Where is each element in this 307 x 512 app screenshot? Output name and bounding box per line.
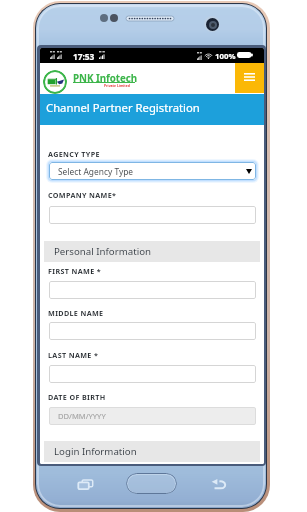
button[interactable]: Date of birth xyxy=(49,407,256,425)
staticText: 17:53 xyxy=(73,51,95,62)
staticText: Channel Partner Registration xyxy=(46,100,200,115)
button[interactable]: Home xyxy=(126,473,177,494)
staticText: Select Agency Type xyxy=(58,166,134,177)
staticText: DATE OF BIRTH xyxy=(48,392,106,402)
staticText: DD/MM/YYYY xyxy=(58,411,106,421)
staticText: Personal Information xyxy=(54,245,152,258)
staticText: COMPANY NAME* xyxy=(48,190,117,200)
staticText: Private Limited xyxy=(104,83,130,88)
button[interactable]: Text field xyxy=(49,322,256,340)
staticText: MIDDLE NAME xyxy=(48,308,104,318)
staticText: FIRST NAME * xyxy=(48,266,102,276)
button[interactable]: Recent apps xyxy=(74,474,97,495)
staticText: 100% xyxy=(215,51,236,62)
staticText: PNK Infotech xyxy=(73,72,138,85)
staticText: LAST NAME * xyxy=(48,350,99,360)
button[interactable]: Open navigation menu xyxy=(235,63,264,93)
button[interactable]: Back xyxy=(207,474,230,495)
button[interactable]: Text field xyxy=(49,281,256,299)
button[interactable]: Text field xyxy=(49,365,256,383)
button[interactable]: Text field xyxy=(49,206,256,224)
staticText: Login Information xyxy=(54,445,137,458)
button[interactable]: Select agency type xyxy=(49,162,256,180)
staticText: AGENCY TYPE xyxy=(48,149,100,159)
